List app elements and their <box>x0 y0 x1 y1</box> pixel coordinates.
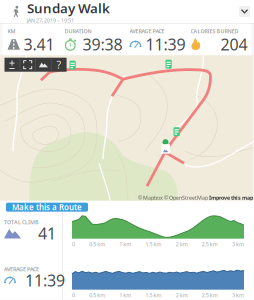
staticText: 3 km <box>232 292 244 299</box>
staticText: AVERAGE PACE <box>4 266 39 273</box>
staticText: 2.5 km <box>202 292 218 299</box>
staticText: 0.5 km <box>89 241 105 248</box>
staticText: 3.41 <box>23 34 54 55</box>
staticText: 41 <box>38 223 56 244</box>
staticText: Improve this map <box>209 194 253 201</box>
staticText: 204 <box>220 34 247 55</box>
staticText: 0 <box>72 292 75 299</box>
staticText: 1 km <box>119 292 131 299</box>
staticText: DURATION <box>64 28 91 35</box>
staticText: KM <box>7 28 15 35</box>
button[interactable]: Full screen <box>20 58 35 72</box>
staticText: CALORIES BURNED <box>190 28 238 35</box>
staticText: 2 km <box>176 292 188 299</box>
staticText: 11:39 <box>145 34 185 55</box>
staticText: 2.5 km <box>202 241 218 248</box>
staticText: 39:38 <box>82 34 122 55</box>
staticText: AVERAGE PACE <box>129 28 164 35</box>
staticText: © Mapbox © OpenStreetMap <box>138 194 209 201</box>
staticText: 0 <box>72 241 75 248</box>
staticText: 3 km <box>232 241 244 248</box>
staticText: Make this a Route <box>12 202 82 212</box>
staticText: 0.5 km <box>89 292 105 299</box>
button[interactable]: Make this a Route <box>6 203 88 212</box>
staticText: 1.5 km <box>145 292 161 299</box>
staticText: TOTAL CLIMB <box>4 219 39 226</box>
staticText: 11:39 <box>25 270 65 291</box>
staticText: 1.5 km <box>145 241 161 248</box>
staticText: 2 km <box>176 241 188 248</box>
staticText: ? <box>57 58 62 72</box>
staticText: Sunday Walk <box>27 0 110 17</box>
button[interactable]: Help <box>52 58 67 72</box>
staticText: 1 km <box>119 241 131 248</box>
button[interactable]: Zoom <box>4 58 19 72</box>
button[interactable]: Terrain <box>36 58 51 72</box>
staticText: JAN 27, 2019 – 19:51 <box>27 17 74 24</box>
button[interactable]: Collapse <box>239 6 250 17</box>
